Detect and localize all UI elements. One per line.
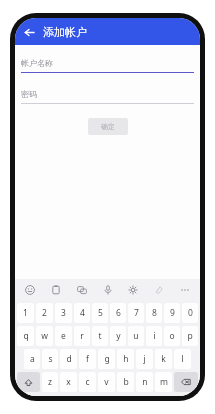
staticText: r bbox=[80, 330, 84, 342]
staticText: f bbox=[86, 353, 89, 365]
button[interactable]: o bbox=[164, 326, 180, 346]
button[interactable]: j bbox=[136, 349, 153, 369]
staticText: 0 bbox=[188, 307, 193, 319]
staticText: 9 bbox=[170, 307, 175, 319]
button[interactable]: n bbox=[136, 372, 153, 392]
button[interactable]: d bbox=[60, 349, 77, 369]
button[interactable]: 4 bbox=[74, 303, 90, 323]
staticText: m bbox=[160, 376, 168, 388]
button[interactable]: i bbox=[146, 326, 162, 346]
staticText: o bbox=[169, 330, 175, 342]
staticText: 确定 bbox=[101, 122, 115, 131]
button[interactable]: b bbox=[117, 372, 134, 392]
button[interactable]: e bbox=[55, 326, 72, 346]
button[interactable]: 1 bbox=[17, 303, 34, 323]
staticText: b bbox=[123, 376, 129, 388]
staticText: c bbox=[85, 376, 90, 388]
staticText: 1 bbox=[23, 307, 28, 319]
button[interactable]: 9 bbox=[164, 303, 180, 323]
staticText: q bbox=[23, 330, 29, 342]
staticText: x bbox=[66, 376, 71, 388]
button[interactable]: Translate bbox=[73, 281, 91, 299]
button[interactable]: Back bbox=[19, 22, 39, 42]
button[interactable]: c bbox=[79, 372, 96, 392]
staticText: 6 bbox=[116, 307, 121, 319]
staticText: w bbox=[41, 330, 48, 342]
button[interactable]: l bbox=[174, 349, 191, 369]
button[interactable]: 0 bbox=[182, 303, 198, 323]
button[interactable]: Settings bbox=[124, 281, 142, 299]
staticText: 帐户名称 bbox=[21, 58, 53, 68]
button[interactable]: q bbox=[17, 326, 34, 346]
staticText: n bbox=[142, 376, 148, 388]
button[interactable]: r bbox=[74, 326, 90, 346]
staticText: j bbox=[143, 353, 146, 365]
staticText: 5 bbox=[98, 307, 103, 319]
button[interactable]: 确定 bbox=[88, 118, 128, 135]
staticText: u bbox=[133, 330, 139, 342]
button[interactable]: k bbox=[155, 349, 172, 369]
staticText: 7 bbox=[134, 307, 139, 319]
button[interactable]: z bbox=[42, 372, 58, 392]
staticText: l bbox=[181, 353, 184, 365]
button[interactable]: t bbox=[92, 326, 108, 346]
button[interactable]: 8 bbox=[146, 303, 162, 323]
button[interactable]: g bbox=[98, 349, 115, 369]
button[interactable]: 3 bbox=[55, 303, 72, 323]
button[interactable]: More bbox=[176, 281, 194, 299]
staticText: 8 bbox=[152, 307, 157, 319]
button[interactable]: m bbox=[155, 372, 172, 392]
staticText: v bbox=[104, 376, 109, 388]
button[interactable]: 6 bbox=[110, 303, 126, 323]
button[interactable]: Clipboard bbox=[47, 281, 65, 299]
button[interactable]: a bbox=[24, 349, 40, 369]
staticText: t bbox=[98, 330, 102, 342]
button[interactable]: Backspace bbox=[174, 372, 198, 392]
staticText: 2 bbox=[42, 307, 47, 319]
staticText: i bbox=[153, 330, 156, 342]
button[interactable]: v bbox=[98, 372, 115, 392]
button[interactable]: 2 bbox=[36, 303, 53, 323]
button[interactable]: x bbox=[60, 372, 77, 392]
button[interactable]: w bbox=[36, 326, 53, 346]
staticText: s bbox=[48, 353, 53, 365]
button[interactable]: s bbox=[42, 349, 58, 369]
staticText: 4 bbox=[80, 307, 85, 319]
button[interactable]: Theme bbox=[150, 281, 168, 299]
button[interactable]: 7 bbox=[128, 303, 144, 323]
button[interactable]: u bbox=[128, 326, 144, 346]
staticText: h bbox=[123, 353, 129, 365]
button[interactable]: y bbox=[110, 326, 126, 346]
button[interactable]: Emoji bbox=[21, 281, 39, 299]
staticText: a bbox=[30, 353, 35, 365]
staticText: 密码 bbox=[21, 89, 37, 99]
button[interactable]: 帐户名称 bbox=[21, 58, 194, 73]
button[interactable]: Shift bbox=[17, 372, 40, 392]
staticText: 3 bbox=[61, 307, 66, 319]
staticText: p bbox=[187, 330, 193, 342]
button[interactable]: 密码 bbox=[21, 89, 194, 104]
button[interactable]: f bbox=[79, 349, 96, 369]
staticText: y bbox=[116, 330, 121, 342]
staticText: 添加帐户 bbox=[43, 25, 87, 39]
button[interactable]: 5 bbox=[92, 303, 108, 323]
staticText: g bbox=[104, 353, 110, 365]
staticText: d bbox=[66, 353, 72, 365]
staticText: e bbox=[61, 330, 66, 342]
button[interactable]: h bbox=[117, 349, 134, 369]
staticText: z bbox=[48, 376, 52, 388]
button[interactable]: p bbox=[182, 326, 198, 346]
staticText: k bbox=[161, 353, 166, 365]
button[interactable]: Voice input bbox=[99, 281, 117, 299]
